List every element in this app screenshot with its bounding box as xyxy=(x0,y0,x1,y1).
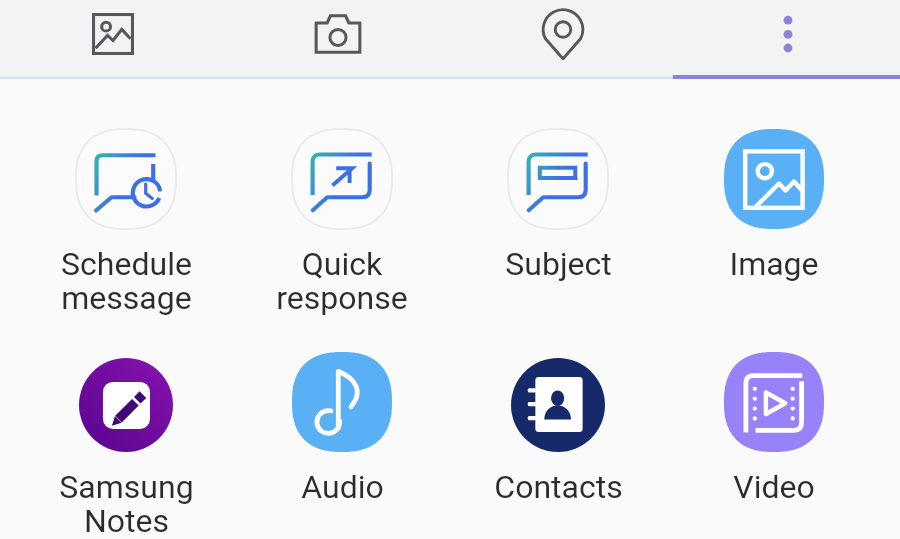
staticText: Audio xyxy=(301,468,384,506)
button[interactable]: Image xyxy=(666,129,882,283)
staticText: Image xyxy=(729,245,819,283)
button[interactable]: More options xyxy=(675,0,900,67)
staticText: Samsung Notes xyxy=(59,468,194,539)
button[interactable]: Subject xyxy=(450,129,666,283)
staticText: Schedule message xyxy=(61,245,192,317)
staticText: Video xyxy=(733,468,815,506)
staticText: Subject xyxy=(505,245,612,283)
button[interactable]: Video xyxy=(666,352,882,506)
button[interactable]: Location xyxy=(450,0,675,67)
button[interactable]: Contacts xyxy=(450,352,666,506)
button[interactable]: Audio xyxy=(234,352,450,506)
button[interactable]: Samsung Notes xyxy=(18,352,234,539)
button[interactable]: Quick response xyxy=(234,129,450,317)
button[interactable]: Camera xyxy=(225,0,450,67)
staticText: Contacts xyxy=(494,468,623,506)
button[interactable]: Images xyxy=(0,0,225,67)
button[interactable]: Schedule message xyxy=(18,129,234,317)
staticText: Quick response xyxy=(276,245,408,317)
